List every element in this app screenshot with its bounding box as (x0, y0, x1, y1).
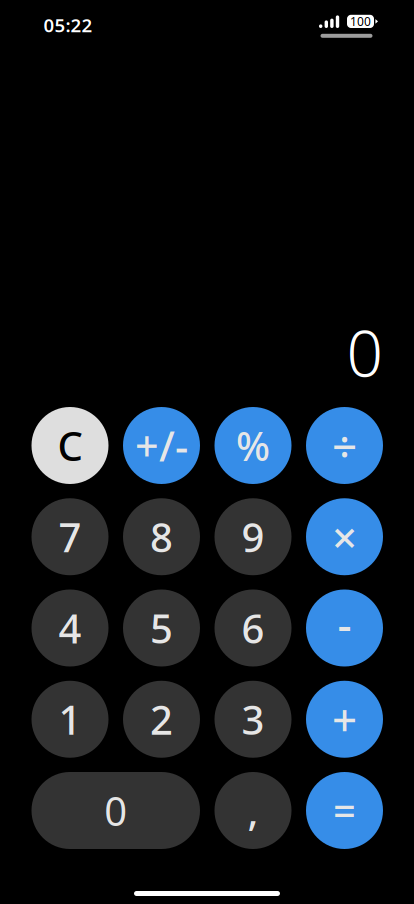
staticText: % (236, 419, 270, 472)
staticText: - (337, 595, 351, 653)
button[interactable]: 8 (123, 498, 200, 575)
staticText: 8 (150, 510, 173, 563)
staticText: = (333, 784, 356, 837)
staticText: 0 (346, 309, 383, 394)
staticText: 2 (150, 693, 173, 746)
button[interactable]: Decimal separator (214, 772, 291, 849)
staticText: 7 (58, 510, 81, 563)
staticText: 1 (58, 693, 81, 746)
button[interactable]: 6 (214, 589, 291, 666)
staticText: +/- (135, 418, 188, 473)
staticText: 0 (104, 784, 127, 837)
staticText: ÷ (332, 416, 357, 475)
staticText: 6 (241, 601, 264, 654)
button[interactable]: 4 (31, 589, 108, 666)
staticText: C (57, 419, 82, 472)
staticText: × (332, 507, 357, 566)
button[interactable]: Percent (214, 407, 291, 484)
button[interactable]: 7 (31, 498, 108, 575)
button[interactable]: Add (306, 681, 383, 758)
staticText: 3 (241, 693, 264, 746)
staticText: 05:22 (43, 13, 92, 37)
button[interactable]: Clear (31, 407, 108, 484)
button[interactable]: Plus minus (123, 407, 200, 484)
staticText: + (332, 690, 357, 748)
button[interactable]: 9 (214, 498, 291, 575)
staticText: , (247, 784, 258, 837)
button[interactable]: Divide (306, 407, 383, 484)
button[interactable]: 1 (31, 681, 108, 758)
button[interactable]: Subtract (306, 589, 383, 666)
button[interactable]: 3 (214, 681, 291, 758)
button[interactable]: 0 (31, 772, 200, 849)
button[interactable]: Equals (306, 772, 383, 849)
staticText: 5 (150, 601, 173, 654)
button[interactable]: Multiply (306, 498, 383, 575)
staticText: 100 (350, 13, 371, 29)
staticText: 4 (58, 601, 81, 654)
staticText: 9 (241, 510, 264, 563)
button[interactable]: 2 (123, 681, 200, 758)
button[interactable]: 5 (123, 589, 200, 666)
